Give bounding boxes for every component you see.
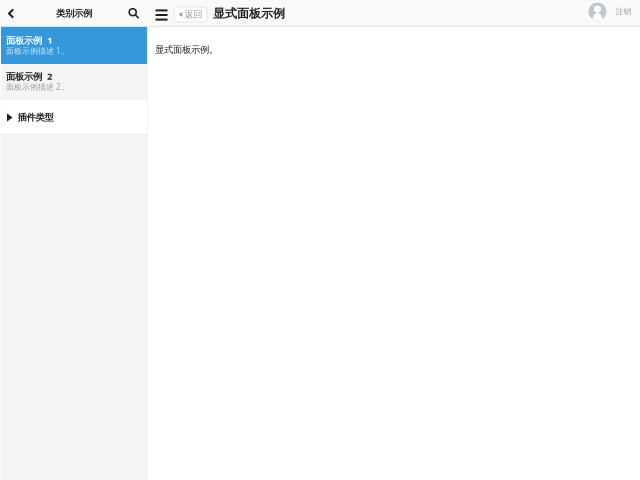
button[interactable]: Toggle sidebar bbox=[151, 1, 171, 28]
staticText: 显式面板示例。 bbox=[155, 44, 218, 55]
button[interactable]: Search bbox=[123, 0, 145, 27]
staticText: 注销 bbox=[615, 7, 631, 16]
staticText: 类别示例 bbox=[56, 8, 92, 19]
staticText: 面板示例 1 bbox=[6, 34, 52, 46]
staticText: 面板示例描述 2。 bbox=[6, 81, 69, 92]
button[interactable]: Back bbox=[0, 0, 22, 27]
button[interactable]: 返回 bbox=[174, 7, 207, 22]
staticText: 面板示例 2 bbox=[6, 70, 52, 82]
button[interactable]: 面板示例 1 bbox=[0, 27, 147, 64]
staticText: 返回 bbox=[184, 9, 202, 20]
staticText: 显式面板示例 bbox=[213, 6, 285, 21]
button[interactable]: 面板示例 2 bbox=[0, 64, 147, 100]
button[interactable]: 注销 bbox=[588, 2, 631, 20]
staticText: 插件类型 bbox=[18, 112, 54, 123]
staticText: 面板示例描述 1。 bbox=[6, 45, 69, 56]
button[interactable]: 插件类型 bbox=[0, 100, 147, 135]
